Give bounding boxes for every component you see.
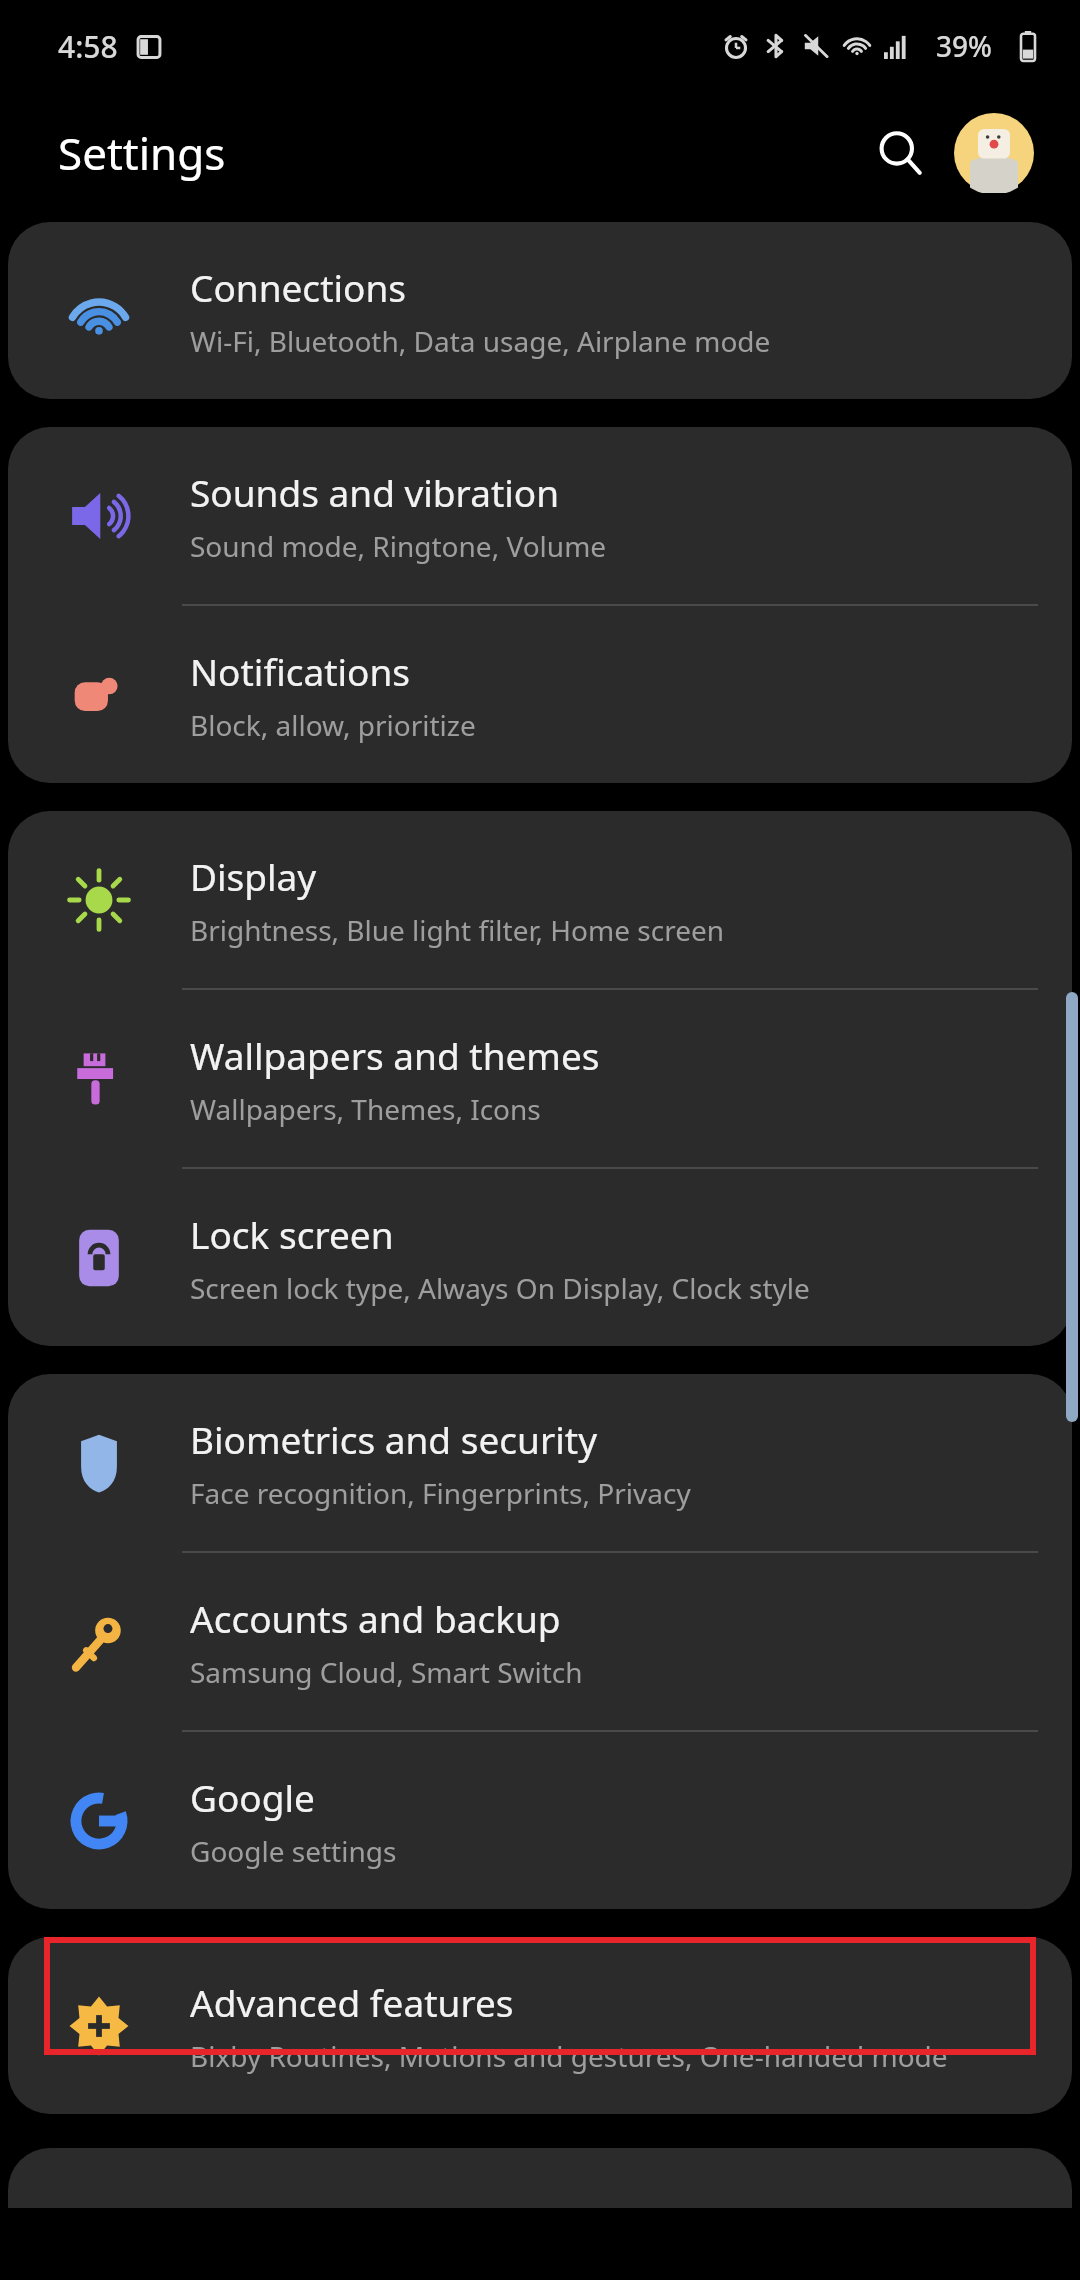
button[interactable]: Search bbox=[858, 111, 942, 195]
staticText: Display bbox=[190, 851, 317, 901]
staticText: Wallpapers and themes bbox=[190, 1030, 600, 1080]
staticText: Wallpapers, Themes, Icons bbox=[190, 1090, 541, 1128]
staticText: Samsung Cloud, Smart Switch bbox=[190, 1653, 583, 1691]
staticText: Block, allow, prioritize bbox=[190, 706, 476, 744]
staticText: Google bbox=[190, 1772, 315, 1822]
staticText: Advanced features bbox=[190, 1977, 514, 2027]
button[interactable]: Sounds and vibration bbox=[8, 427, 1072, 604]
button[interactable]: Lock screen bbox=[8, 1169, 1072, 1346]
button[interactable]: Account bbox=[952, 111, 1036, 195]
staticText: Screen lock type, Always On Display, Clo… bbox=[190, 1269, 810, 1307]
button[interactable]: Wallpapers and themes bbox=[8, 990, 1072, 1167]
staticText: Face recognition, Fingerprints, Privacy bbox=[190, 1474, 691, 1512]
button[interactable]: Biometrics and security bbox=[8, 1374, 1072, 1551]
button[interactable]: Google bbox=[8, 1732, 1072, 1909]
staticText: Sound mode, Ringtone, Volume bbox=[190, 527, 607, 565]
staticText: Bixby Routines, Motions and gestures, On… bbox=[190, 2037, 948, 2075]
staticText: Biometrics and security bbox=[190, 1414, 597, 1464]
staticText: Notifications bbox=[190, 646, 411, 696]
button[interactable]: Connections bbox=[8, 222, 1072, 399]
staticText: Brightness, Blue light filter, Home scre… bbox=[190, 911, 725, 949]
button[interactable]: Notifications bbox=[8, 606, 1072, 783]
staticText: 39% bbox=[936, 27, 992, 65]
staticText: Google settings bbox=[190, 1832, 397, 1870]
staticText: Sounds and vibration bbox=[190, 467, 560, 517]
button[interactable]: Advanced features bbox=[8, 1937, 1072, 2114]
staticText: Settings bbox=[58, 123, 226, 183]
staticText: 4:58 bbox=[58, 26, 118, 67]
staticText: Wi-Fi, Bluetooth, Data usage, Airplane m… bbox=[190, 322, 771, 360]
staticText: Lock screen bbox=[190, 1209, 394, 1259]
button[interactable]: Accounts and backup bbox=[8, 1553, 1072, 1730]
button[interactable]: Display bbox=[8, 811, 1072, 988]
staticText: Connections bbox=[190, 262, 407, 312]
staticText: Accounts and backup bbox=[190, 1593, 561, 1643]
